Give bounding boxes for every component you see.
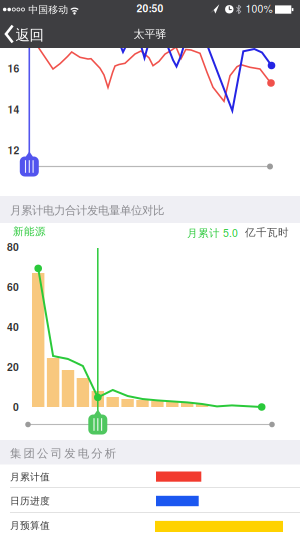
staticText: 电: [78, 446, 89, 461]
staticText: 日历进度: [10, 495, 50, 507]
staticText: 集: [10, 446, 21, 461]
staticText: 80: [7, 239, 19, 254]
staticText: 团: [24, 446, 35, 461]
staticText: 返回: [16, 26, 44, 44]
staticText: 20: [7, 359, 19, 374]
staticText: 14: [7, 102, 19, 117]
staticText: 中国移动: [28, 3, 68, 16]
staticText: 月累计值: [10, 471, 50, 483]
staticText: 司: [51, 446, 62, 461]
staticText: 100%: [245, 1, 272, 16]
staticText: 12: [7, 143, 19, 157]
staticText: 月累计电力合计发电量单位对比: [10, 203, 164, 218]
staticText: 发: [64, 446, 75, 461]
staticText: 月累计 5.0: [187, 225, 238, 240]
staticText: 亿千瓦时: [245, 226, 289, 239]
staticText: 分: [91, 446, 102, 461]
staticText: 0: [13, 399, 19, 414]
staticText: 新能源: [13, 225, 46, 238]
staticText: 40: [7, 319, 19, 334]
staticText: 析: [105, 446, 116, 461]
staticText: 60: [7, 279, 19, 294]
staticText: 太平驿: [133, 27, 166, 41]
staticText: 16: [7, 61, 19, 76]
staticText: 20:50: [136, 0, 163, 15]
staticText: 公: [37, 446, 48, 461]
staticText: 月预算值: [10, 519, 50, 532]
